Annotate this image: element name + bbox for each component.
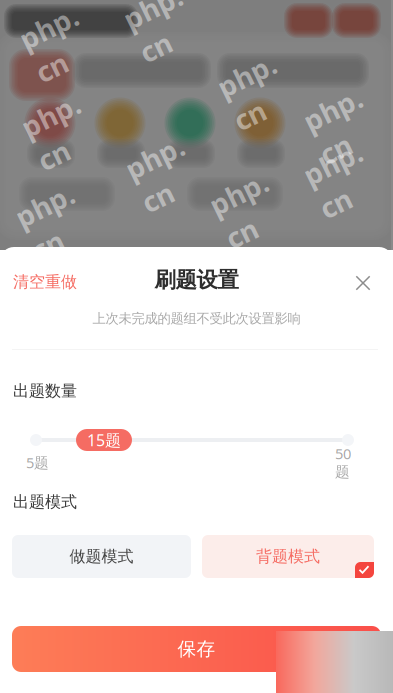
staticText: 50题 [335,444,351,481]
staticText: php.cn [28,95,90,169]
staticText: php.cn [310,89,372,163]
staticText: 5题 [26,453,49,472]
staticText: php.cn [26,7,88,81]
staticText: 上次未完成的题组不受此次设置影响 [92,310,300,327]
staticText: php.cn [22,185,84,259]
button[interactable]: 背题模式 [202,535,374,578]
staticText: 15题 [87,429,121,451]
staticText: 出题模式 [13,492,77,512]
staticText: 做题模式 [69,547,133,566]
staticText: php.cn [132,137,194,211]
button[interactable]: 保存 [12,626,381,672]
button[interactable]: Close [347,272,379,294]
staticText: php.cn [216,173,278,247]
staticText: 出题数量 [13,381,77,401]
staticText: php.cn [130,0,192,61]
staticText: php.cn [310,143,372,217]
staticText: 清空重做 [13,272,77,292]
staticText: 刷题设置 [154,267,238,293]
staticText: 保存 [177,637,215,660]
button[interactable]: 清空重做 [13,271,77,293]
staticText: 背题模式 [256,547,320,566]
staticText: php.cn [224,55,286,129]
button[interactable]: 做题模式 [12,535,191,578]
